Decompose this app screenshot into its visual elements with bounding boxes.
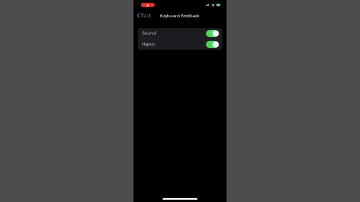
button[interactable]: Back (133, 9, 153, 22)
staticText: Keyboard Feedback (160, 13, 200, 18)
staticText: Back (141, 12, 151, 19)
staticText: Sound (142, 30, 156, 36)
staticText: Haptic (142, 41, 155, 47)
button[interactable]: Haptic (138, 39, 222, 50)
button[interactable]: Sound (138, 28, 222, 39)
